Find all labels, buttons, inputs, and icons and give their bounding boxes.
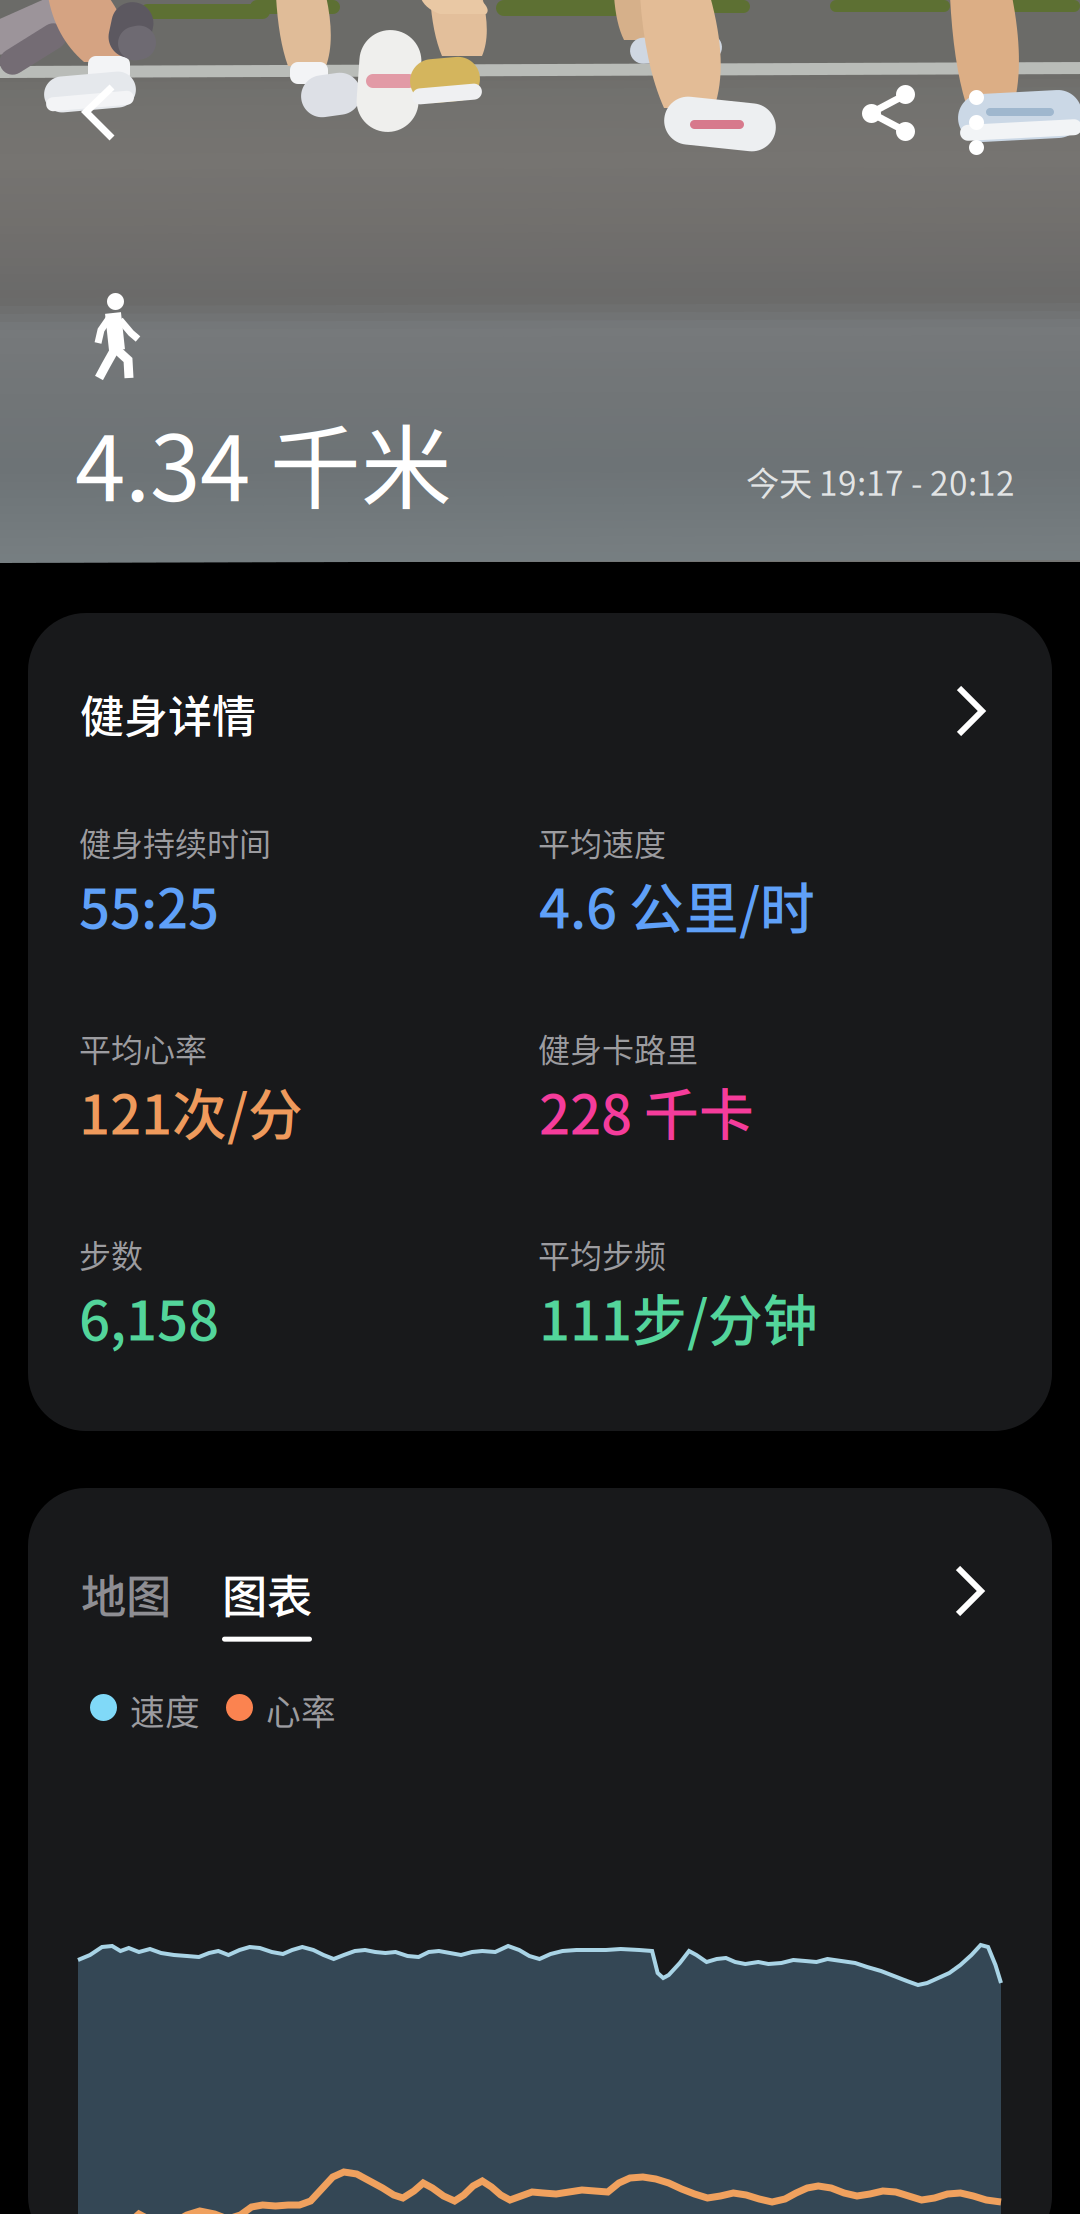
staticText: 健身卡路里 [538,1025,698,1071]
staticText: 平均速度 [538,819,666,865]
button[interactable]: 地图 [73,1553,179,1635]
staticText: 健身持续时间 [79,819,271,865]
staticText: 平均步频 [538,1231,666,1277]
button[interactable]: 图表 [216,1553,318,1642]
staticText: 121次/分 [79,1071,303,1150]
staticText: 4.6 公里/时 [539,865,815,944]
staticText: 步数 [79,1231,143,1277]
staticText: 平均心率 [79,1025,207,1071]
staticText: 图表 [222,1561,312,1627]
staticText: 6,158 [79,1277,219,1356]
button[interactable]: Share [829,57,941,169]
button[interactable]: Open chart [940,1550,1002,1634]
button[interactable]: More options [929,57,1025,169]
button[interactable]: Back [44,62,156,174]
staticText: 今天 19:17 - 20:12 [746,457,1015,505]
staticText: 228 千卡 [539,1071,754,1150]
button[interactable]: 健身详情 [28,613,1052,1431]
staticText: 55:25 [79,865,219,944]
staticText: 4.34 千米 [75,396,452,527]
staticText: 心率 [266,1685,336,1735]
staticText: 速度 [130,1685,200,1735]
staticText: 111步/分钟 [539,1277,818,1356]
staticText: 地图 [81,1561,171,1627]
staticText: 健身详情 [80,682,256,746]
